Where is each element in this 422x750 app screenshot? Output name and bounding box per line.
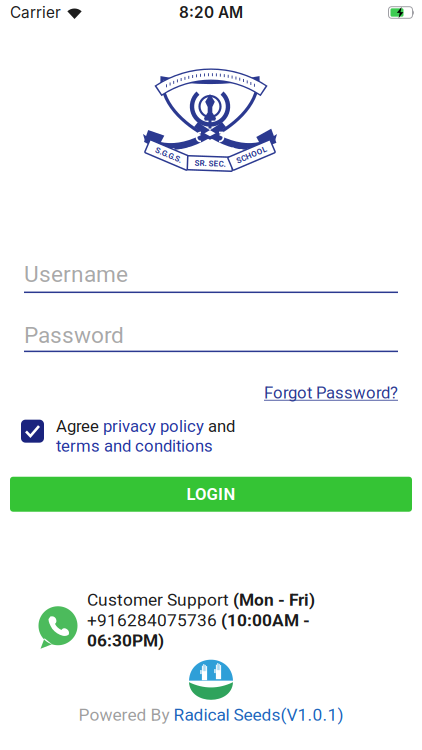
staticText: privacy policy (103, 417, 204, 436)
staticText: SR. SEC. (194, 159, 225, 168)
button[interactable]: Agree to terms (21, 416, 44, 443)
staticText: LOGIN (186, 484, 235, 504)
button[interactable]: terms and conditions (56, 436, 213, 456)
staticText: Forgot Password? (264, 383, 398, 403)
button[interactable]: Username (0, 261, 422, 293)
staticText: Agree (56, 417, 103, 436)
staticText: 06:30PM) (87, 630, 164, 651)
staticText: SCHOOL (235, 150, 267, 160)
staticText: Username (24, 261, 128, 288)
staticText: +916284075736 (87, 610, 221, 630)
staticText: 8:20 AM (179, 3, 243, 22)
staticText: and (204, 417, 235, 436)
staticText: Customer Support (87, 590, 233, 610)
staticText: Radical Seeds(V1.0.1) (173, 705, 343, 725)
staticText: Powered By (78, 705, 173, 725)
staticText: Carrier (10, 3, 61, 22)
staticText: terms and conditions (56, 436, 213, 456)
staticText: S.G.G.S. (154, 150, 182, 160)
button[interactable]: Powered By (78, 705, 343, 725)
button[interactable]: LOGIN (10, 477, 412, 512)
staticText: Password (24, 322, 124, 349)
button[interactable]: Forgot Password? (264, 383, 398, 403)
staticText: (Mon - Fri) (233, 590, 315, 610)
button[interactable]: privacy policy (103, 417, 204, 436)
staticText: (10:00AM - (221, 610, 310, 630)
button[interactable]: Customer Support (0, 590, 422, 651)
button[interactable]: Password (0, 322, 422, 352)
